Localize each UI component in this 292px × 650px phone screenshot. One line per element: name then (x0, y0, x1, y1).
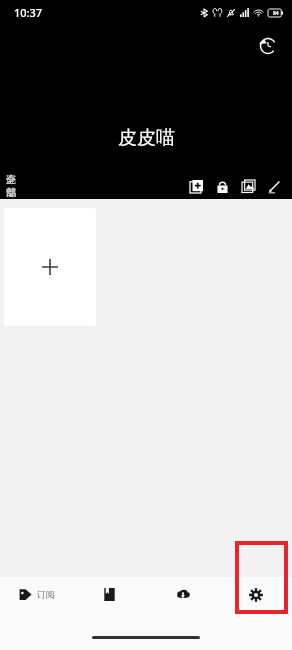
button[interactable]: Downloads (146, 577, 219, 612)
button[interactable]: Lock (209, 173, 235, 199)
staticText: 10:37 (14, 5, 43, 20)
staticText: 皮皮喵 (118, 126, 175, 150)
button[interactable]: Images (235, 173, 261, 199)
button[interactable]: History (252, 30, 284, 62)
button[interactable]: Add collection (183, 173, 209, 199)
button[interactable]: Edit (261, 173, 287, 199)
button[interactable]: 订阅 (0, 577, 73, 612)
staticText: 84 (273, 10, 279, 17)
button[interactable]: Library (73, 577, 146, 612)
staticText: 订阅 (37, 589, 55, 600)
button[interactable]: Add book (4, 208, 96, 326)
button[interactable]: Settings (219, 577, 292, 612)
